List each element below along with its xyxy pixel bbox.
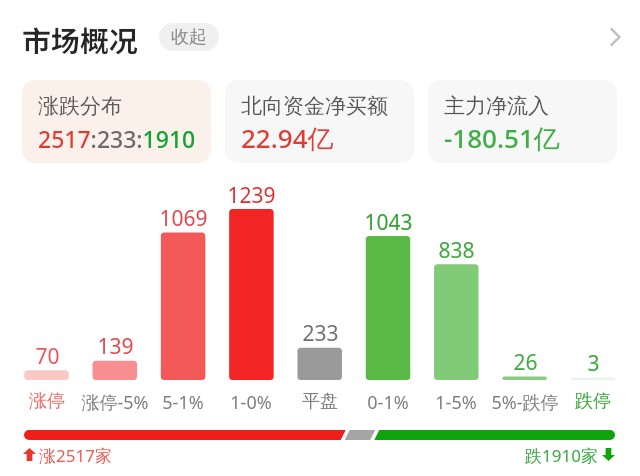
staticText: 233 [302, 319, 339, 348]
staticText: 1239 [227, 181, 276, 210]
staticText: 跌停 [575, 390, 611, 413]
staticText: -180.51亿 [444, 120, 560, 156]
staticText: 涨跌分布 [38, 93, 122, 119]
staticText: 涨2517家 [39, 444, 112, 464]
staticText: 139 [97, 332, 134, 361]
staticText: 5-1% [162, 390, 204, 415]
button[interactable]: 北向资金净买额 [225, 80, 414, 163]
staticText: 1069 [159, 204, 208, 233]
button[interactable]: 涨跌分布 [22, 80, 211, 163]
staticText: 1-5% [435, 390, 477, 415]
staticText: 3 [587, 349, 600, 378]
staticText: 涨停 [29, 390, 65, 413]
staticText: 22.94亿 [241, 120, 334, 156]
staticText: 市场概况 [22, 18, 139, 60]
staticText: 2517:233:1910 [38, 123, 196, 154]
staticText: 跌1910家 [525, 444, 598, 464]
staticText: 涨停-5% [81, 390, 149, 415]
staticText: 70 [35, 342, 60, 371]
staticText: 0-1% [367, 390, 409, 415]
staticText: 1-0% [230, 390, 272, 415]
staticText: 1043 [364, 208, 413, 237]
staticText: 26 [513, 348, 538, 377]
button[interactable]: More [593, 15, 637, 59]
staticText: 北向资金净买额 [241, 93, 388, 119]
staticText: 838 [438, 236, 475, 265]
button[interactable]: 收起 [159, 23, 219, 51]
staticText: 5%-跌停 [491, 390, 559, 415]
button[interactable]: 主力净流入 [428, 80, 617, 163]
staticText: 平盘 [302, 390, 338, 413]
staticText: 主力净流入 [444, 93, 549, 119]
staticText: 收起 [171, 26, 207, 49]
